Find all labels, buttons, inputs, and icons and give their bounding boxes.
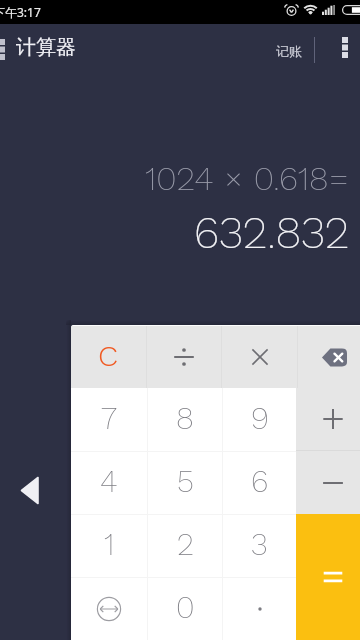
button[interactable]: Minus bbox=[296, 451, 360, 514]
staticText: 2 bbox=[177, 526, 194, 562]
staticText: 6 bbox=[251, 463, 269, 499]
staticText: 1 bbox=[104, 526, 115, 562]
button[interactable]: 0 bbox=[148, 578, 222, 640]
button[interactable]: Equals bbox=[296, 514, 360, 640]
button[interactable]: 1 bbox=[71, 515, 147, 577]
button[interactable]: C bbox=[71, 326, 146, 388]
staticText: C bbox=[98, 338, 119, 373]
button[interactable]: 记账 bbox=[267, 34, 311, 70]
button[interactable]: 5 bbox=[148, 452, 222, 514]
button[interactable]: Back bbox=[9, 468, 49, 512]
staticText: 1024 × 0.618= bbox=[145, 158, 350, 198]
staticText: 记账 bbox=[276, 43, 302, 59]
button[interactable]: Toggle bbox=[71, 578, 147, 640]
button[interactable]: More options bbox=[322, 24, 360, 80]
button[interactable]: Delete bbox=[298, 326, 360, 388]
staticText: 下午3:17 bbox=[0, 4, 41, 20]
button[interactable]: 7 bbox=[71, 388, 147, 451]
staticText: 7 bbox=[101, 400, 117, 436]
staticText: 632.832 bbox=[194, 206, 350, 259]
staticText: 5 bbox=[177, 463, 194, 499]
button[interactable]: 9 bbox=[223, 388, 296, 451]
button[interactable]: Menu bbox=[0, 32, 22, 72]
button[interactable]: Plus bbox=[296, 388, 360, 450]
button[interactable] bbox=[147, 326, 221, 388]
staticText: 3 bbox=[251, 526, 268, 562]
staticText: 0 bbox=[176, 589, 195, 625]
staticText: 计算器 bbox=[16, 35, 76, 60]
button[interactable]: 4 bbox=[71, 452, 147, 514]
button[interactable] bbox=[222, 326, 297, 388]
button[interactable] bbox=[223, 578, 296, 640]
button[interactable]: 3 bbox=[223, 515, 296, 577]
staticText: 4 bbox=[100, 463, 118, 499]
staticText: 8 bbox=[176, 400, 194, 436]
button[interactable]: 6 bbox=[223, 452, 296, 514]
button[interactable]: 2 bbox=[148, 515, 222, 577]
staticText: 9 bbox=[251, 400, 269, 436]
button[interactable]: 8 bbox=[148, 388, 222, 451]
